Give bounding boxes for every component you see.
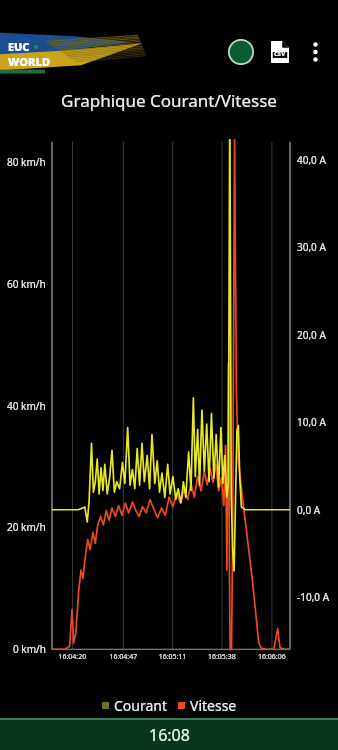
button[interactable]: Export CSV: [262, 34, 298, 70]
button[interactable]: 16:08: [0, 720, 338, 750]
staticText: WORLD: [8, 54, 51, 69]
staticText: 16:08: [149, 724, 190, 746]
staticText: Graphique Courant/Vitesse: [61, 89, 277, 112]
staticText: Courant: [114, 696, 168, 715]
staticText: Vitesse: [190, 696, 237, 715]
staticText: EUC: [8, 39, 30, 54]
button[interactable]: Connection status: [222, 33, 260, 71]
button[interactable]: More options: [298, 35, 332, 69]
staticText: csv: [274, 49, 286, 59]
button[interactable]: EUC World: [0, 30, 150, 74]
button[interactable]: Courant: [102, 696, 168, 715]
button[interactable]: Vitesse: [178, 696, 237, 715]
